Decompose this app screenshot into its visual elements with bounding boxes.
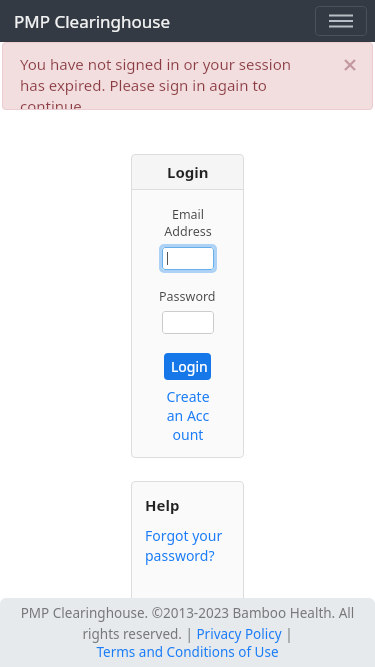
staticText: Login xyxy=(167,162,209,182)
button[interactable] xyxy=(162,311,214,334)
button[interactable]: Dismiss alert xyxy=(341,56,359,74)
staticText: Help xyxy=(145,495,180,515)
button[interactable]: Create an Account xyxy=(165,387,211,444)
button[interactable]: Terms and Conditions of Use xyxy=(20,643,355,661)
button[interactable]: Forgot your password? xyxy=(145,526,230,565)
staticText: Email Address xyxy=(164,206,212,240)
staticText: Password xyxy=(159,288,216,305)
button[interactable]: Menu xyxy=(315,6,367,36)
button[interactable] xyxy=(162,247,214,270)
staticText: PMP Clearinghouse xyxy=(14,10,171,33)
staticText: You have not signed in or your session h… xyxy=(20,54,313,110)
button[interactable]: Login xyxy=(164,353,211,380)
staticText: Login xyxy=(171,357,208,376)
staticText: PMP Clearinghouse. ©2013-2023 Bamboo Hea… xyxy=(20,604,355,643)
